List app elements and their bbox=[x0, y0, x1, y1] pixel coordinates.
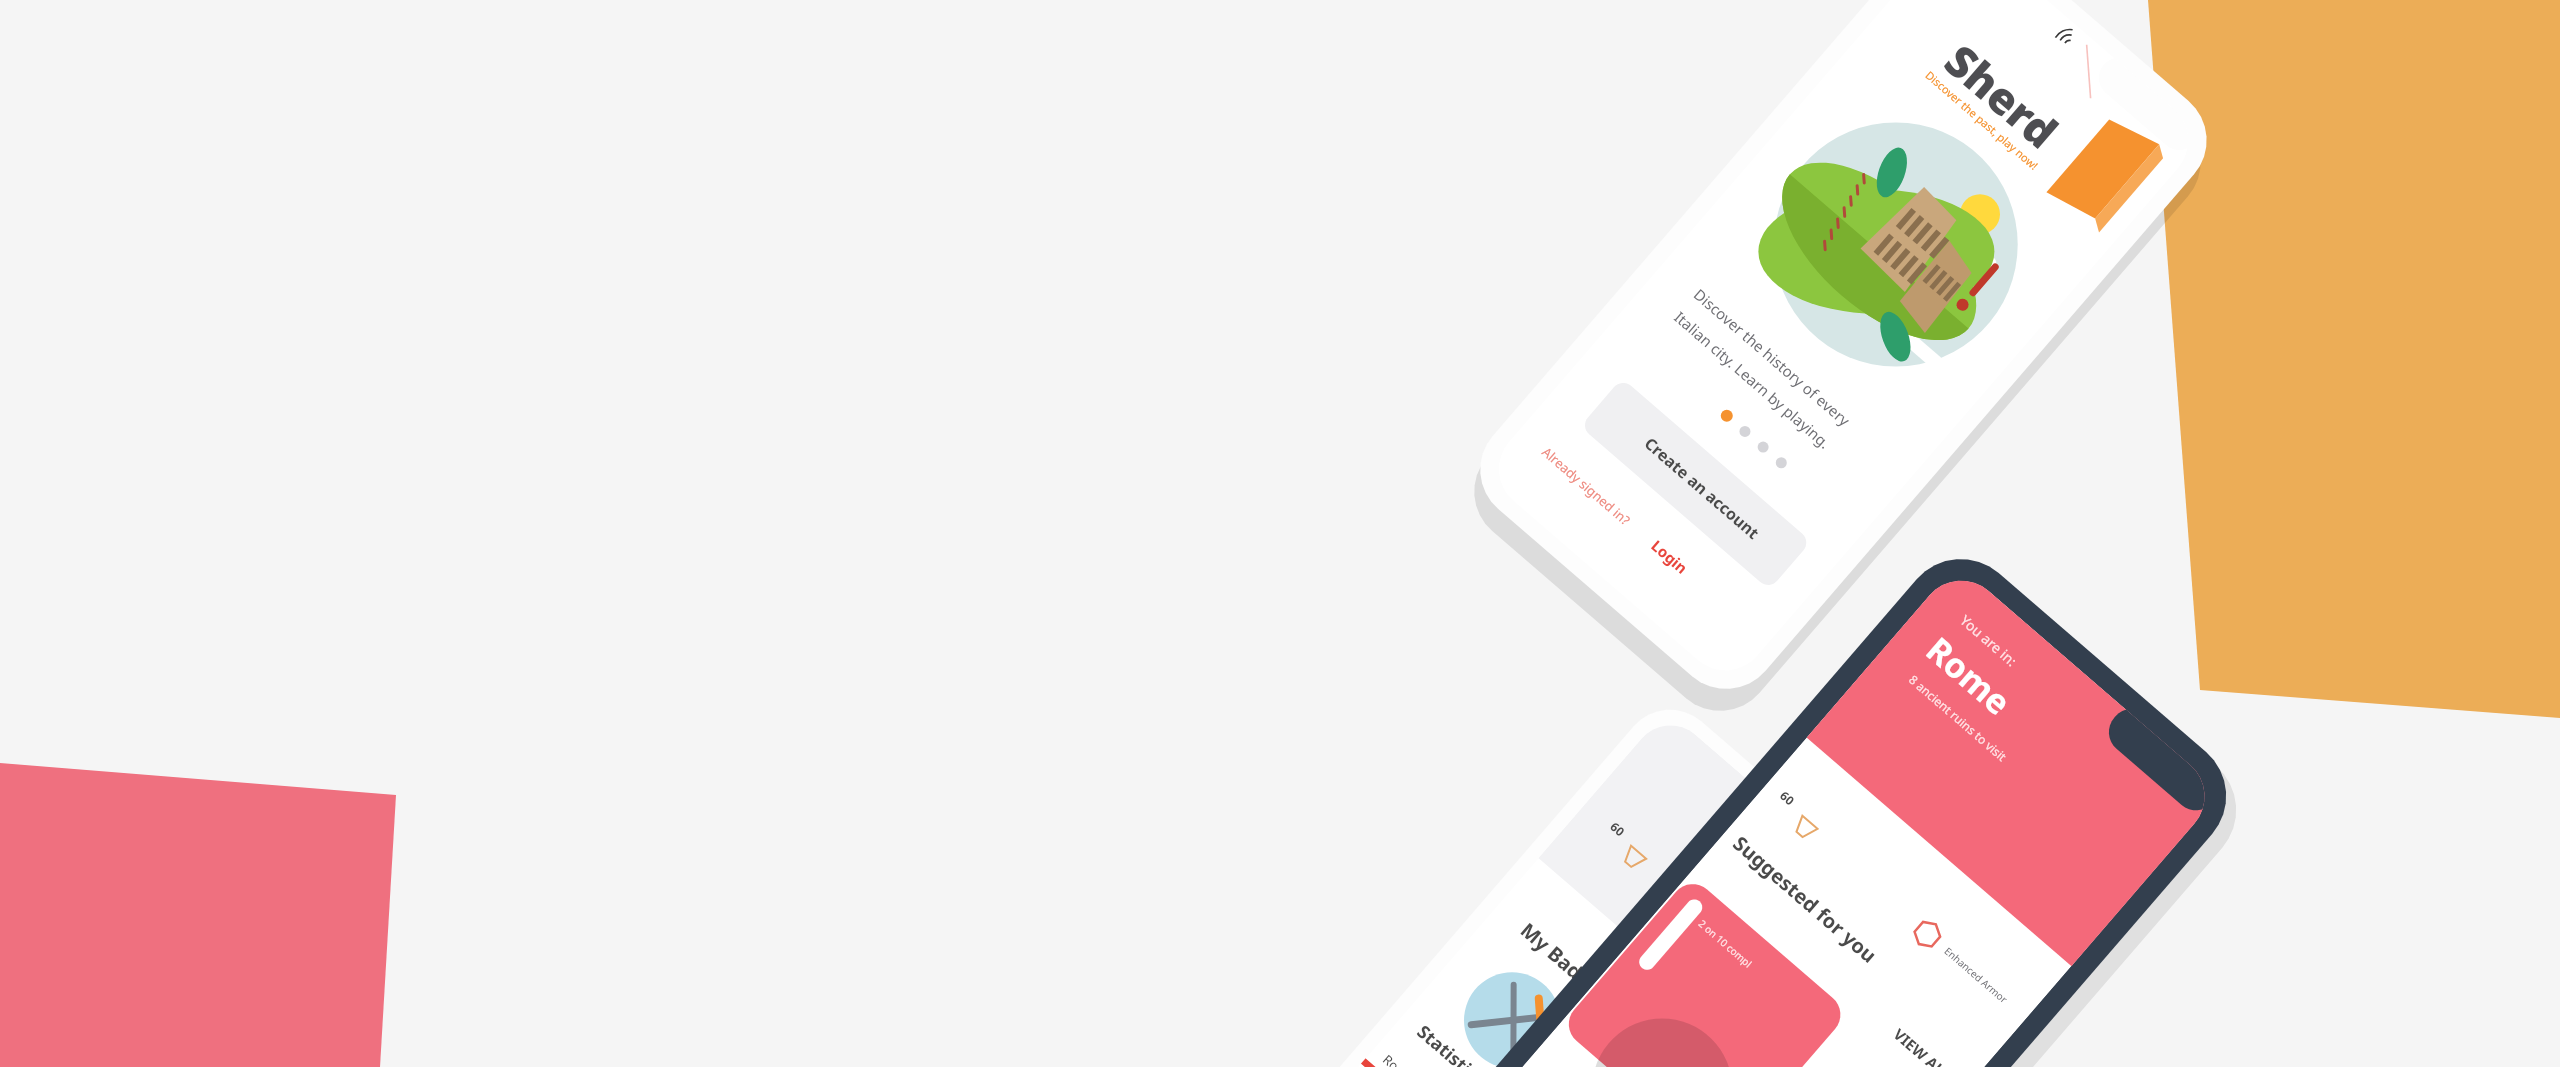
button[interactable]: Sherd app showcase bbox=[0, 0, 2560, 1067]
